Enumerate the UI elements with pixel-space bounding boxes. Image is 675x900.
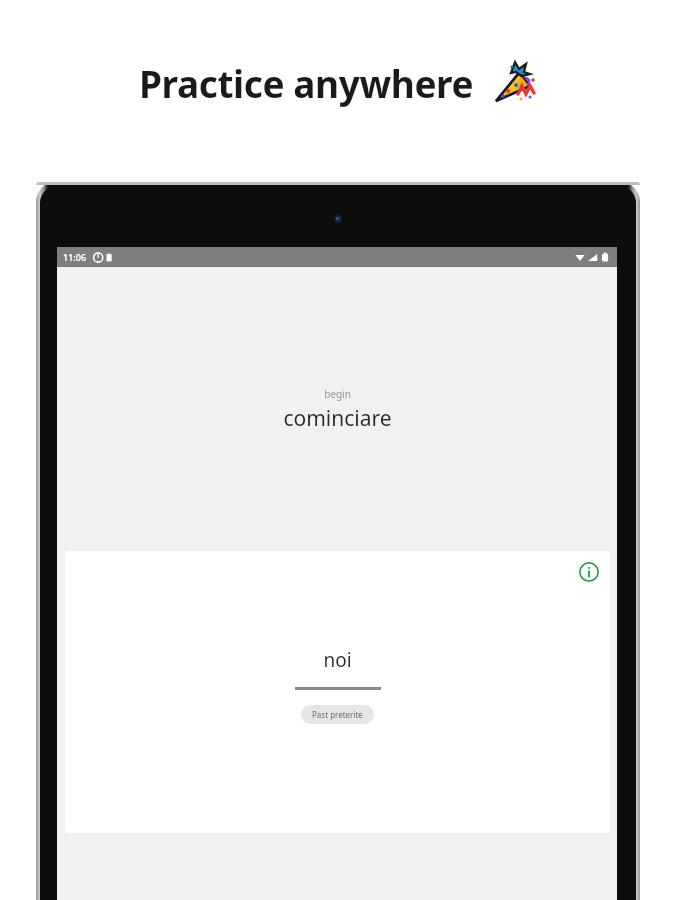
- staticText: 11:06: [63, 251, 87, 263]
- staticText: noi: [323, 647, 352, 673]
- staticText: Past preterite: [312, 709, 363, 720]
- staticText: begin: [324, 387, 351, 401]
- staticText: cominciare: [283, 404, 392, 433]
- staticText: Practice anywhere: [139, 58, 474, 108]
- button[interactable]: Information: [578, 561, 600, 583]
- button[interactable]: Past preterite: [301, 705, 374, 724]
